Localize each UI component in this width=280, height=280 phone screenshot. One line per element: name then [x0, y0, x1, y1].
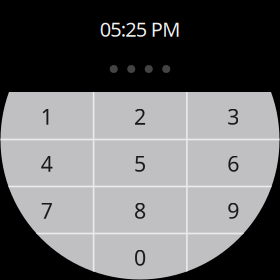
staticText: 9 [227, 196, 239, 225]
staticText: 7 [41, 196, 53, 225]
button[interactable]: 2 [93, 92, 187, 139]
staticText: 4 [41, 149, 53, 178]
staticText: 5 [134, 149, 146, 178]
button[interactable]: 7 [0, 186, 93, 233]
button[interactable]: 5 [93, 139, 187, 186]
staticText: 2 [134, 102, 146, 131]
staticText: 3 [227, 102, 239, 131]
staticText: 6 [227, 149, 239, 178]
staticText: 8 [134, 196, 146, 225]
staticText: 0 [134, 243, 146, 272]
button[interactable]: 3 [187, 92, 280, 139]
button[interactable]: 0 [93, 233, 187, 280]
button[interactable]: 9 [187, 186, 280, 233]
button[interactable]: 4 [0, 139, 93, 186]
staticText: 1 [41, 102, 53, 131]
button[interactable]: 1 [0, 92, 93, 139]
button[interactable]: 8 [93, 186, 187, 233]
button[interactable]: 6 [187, 139, 280, 186]
staticText: 05:25 PM [100, 16, 180, 42]
